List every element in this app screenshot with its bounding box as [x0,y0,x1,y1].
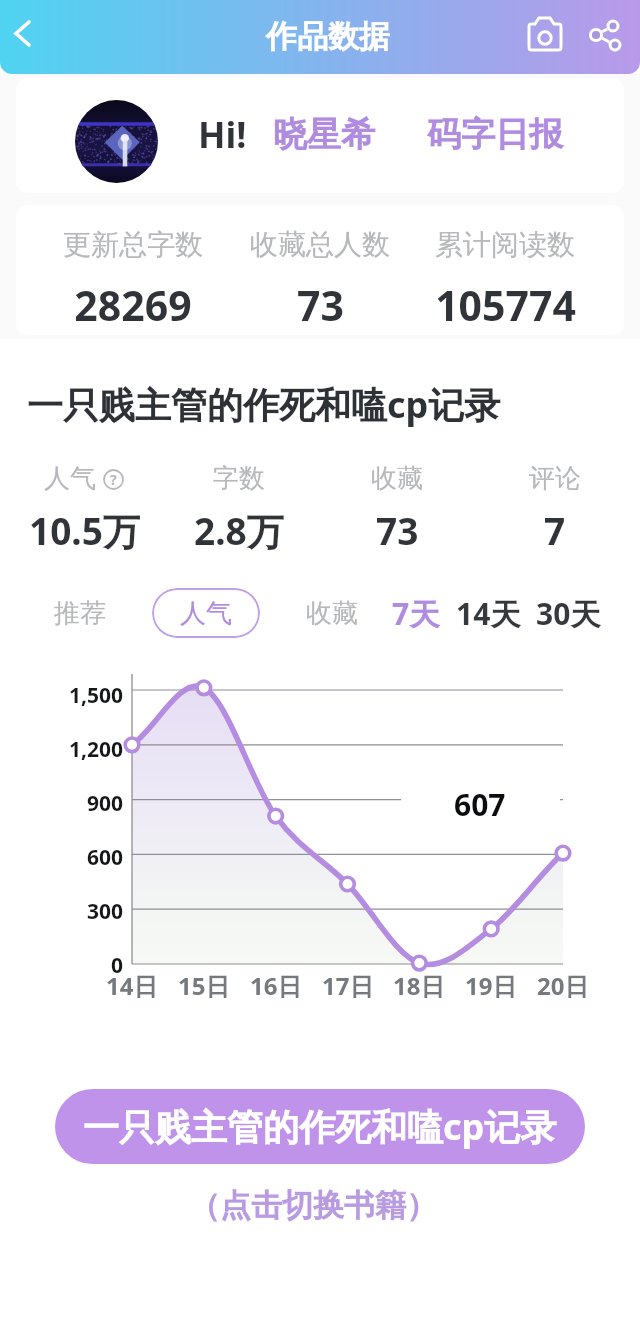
staticText: 人气 [180,597,232,630]
button[interactable]: Share [580,11,628,59]
staticText: 推荐 [54,597,106,630]
staticText: 16日 [250,969,302,1002]
staticText: 73 [297,277,344,333]
staticText: 10.5万 [29,505,140,556]
button[interactable]: 人气 [0,462,174,556]
staticText: 收藏 [306,597,358,630]
button[interactable]: 30天 [528,589,608,637]
staticText: 0 [111,951,124,980]
staticText: 28269 [74,277,192,333]
staticText: 105774 [435,277,576,333]
staticText: 7 [544,505,566,555]
staticText: 900 [87,789,124,818]
staticText: 1,500 [69,681,124,710]
staticText: 7天 [392,593,440,634]
button[interactable]: 一只贱主管的作死和嗑cp记录 [55,1089,585,1164]
staticText: 更新总字数 [63,227,203,262]
staticText: 晓星希 [273,113,375,156]
staticText: 一只贱主管的作死和嗑cp记录 [27,380,501,429]
button[interactable]: 更新总字数 [33,227,233,333]
staticText: 19日 [465,969,517,1002]
staticText: 评论 [529,462,581,495]
button[interactable]: 推荐 [43,588,117,638]
button[interactable]: Back [0,11,46,57]
button[interactable]: 一只贱主管的作死和嗑cp记录 [27,374,513,430]
staticText: 14天 [456,593,521,634]
staticText: 30天 [536,593,601,634]
button[interactable]: 收藏 [295,588,369,638]
staticText: Hi! [198,110,247,159]
staticText: 607 [454,784,506,822]
button[interactable]: 收藏 [307,462,487,555]
staticText: ? [110,470,117,489]
button[interactable]: 累计阅读数 [405,227,605,333]
staticText: 2.8万 [194,505,284,556]
button[interactable]: 14天 [448,589,528,637]
staticText: 300 [87,897,124,926]
staticText: 字数 [213,462,265,495]
staticText: （点击切换书籍） [189,1186,437,1225]
staticText: 14日 [106,969,158,1002]
staticText: 18日 [393,969,445,1002]
staticText: 收藏总人数 [250,227,390,262]
staticText: 收藏 [371,462,423,495]
staticText: 15日 [178,969,230,1002]
staticText: 17日 [322,969,374,1002]
button[interactable]: （点击切换书籍） [163,1184,463,1226]
staticText: 累计阅读数 [435,227,575,262]
button[interactable]: 字数 [149,462,329,556]
button[interactable]: 收藏总人数 [220,227,420,333]
staticText: 码字日报 [427,113,563,156]
staticText: 一只贱主管的作死和嗑cp记录 [83,1102,557,1151]
staticText: 600 [87,843,124,872]
button[interactable]: 评论 [465,462,640,555]
button[interactable]: Camera [521,9,569,57]
staticText: 作品数据 [266,17,390,56]
staticText: 73 [376,505,419,555]
staticText: 人气 [44,462,96,495]
button[interactable]: Hi! [16,78,624,193]
button[interactable]: 人气 [152,588,260,638]
staticText: 20日 [537,969,589,1002]
button[interactable]: 7天 [380,589,452,637]
staticText: 1,200 [69,735,124,764]
